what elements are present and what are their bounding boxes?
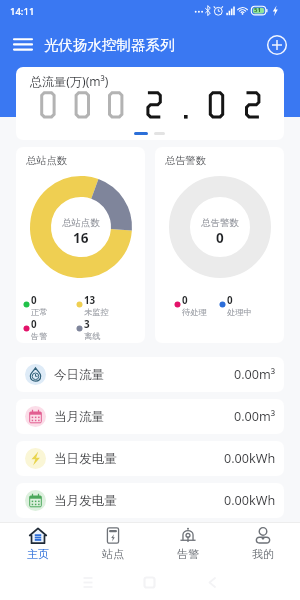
button[interactable]: 当月流量 bbox=[16, 399, 284, 434]
button[interactable]: 主页 bbox=[0, 523, 75, 565]
staticText: 光伏扬水控制器系列 bbox=[44, 36, 175, 54]
button[interactable]: 站点 bbox=[75, 523, 150, 565]
staticText: 0.00kWh bbox=[224, 492, 276, 509]
staticText: 当月发电量 bbox=[54, 493, 117, 509]
staticText: 待处理 bbox=[182, 307, 207, 317]
staticText: 主页 bbox=[27, 547, 49, 561]
button[interactable]: 当月发电量 bbox=[16, 483, 284, 518]
staticText: 当月流量 bbox=[54, 409, 105, 425]
button[interactable]: 我的 bbox=[225, 523, 300, 565]
button[interactable]: Add bbox=[264, 32, 290, 58]
staticText: 0.00m³ bbox=[234, 366, 276, 383]
staticText: 0.00m³ bbox=[234, 408, 276, 425]
staticText: 16 bbox=[73, 229, 89, 247]
staticText: 我的 bbox=[252, 547, 274, 561]
staticText: 0 bbox=[216, 229, 224, 247]
staticText: 0 bbox=[31, 318, 37, 331]
button[interactable]: 告警 bbox=[150, 523, 225, 565]
button[interactable]: 总站点数 bbox=[16, 147, 145, 343]
staticText: 告警 bbox=[177, 547, 199, 561]
button[interactable]: 总流量(万)(m³) bbox=[16, 67, 284, 140]
staticText: 51 bbox=[254, 6, 261, 14]
staticText: 0 bbox=[31, 294, 37, 307]
staticText: 14:11 bbox=[10, 5, 35, 18]
staticText: 13 bbox=[84, 294, 96, 307]
staticText: 离线 bbox=[84, 331, 101, 341]
staticText: 正常 bbox=[31, 307, 48, 317]
staticText: 总站点数 bbox=[26, 154, 68, 167]
button[interactable]: 总告警数 bbox=[155, 147, 284, 343]
button[interactable]: Menu bbox=[9, 31, 36, 58]
button[interactable]: 今日流量 bbox=[16, 357, 284, 392]
staticText: 今日流量 bbox=[54, 367, 105, 383]
staticText: 0 bbox=[227, 294, 233, 307]
staticText: 0 bbox=[182, 294, 188, 307]
staticText: 总流量(万)(m³) bbox=[30, 73, 109, 90]
staticText: 总告警数 bbox=[165, 154, 207, 167]
staticText: 总站点数 bbox=[62, 217, 100, 229]
staticText: 告警 bbox=[31, 331, 48, 341]
button[interactable]: 当日发电量 bbox=[16, 441, 284, 476]
staticText: 0.00kWh bbox=[224, 450, 276, 467]
staticText: 站点 bbox=[102, 547, 124, 561]
staticText: 当日发电量 bbox=[54, 451, 117, 467]
staticText: 总告警数 bbox=[201, 217, 239, 229]
staticText: 未监控 bbox=[84, 307, 109, 317]
staticText: 3 bbox=[84, 318, 90, 331]
staticText: 处理中 bbox=[227, 307, 252, 317]
